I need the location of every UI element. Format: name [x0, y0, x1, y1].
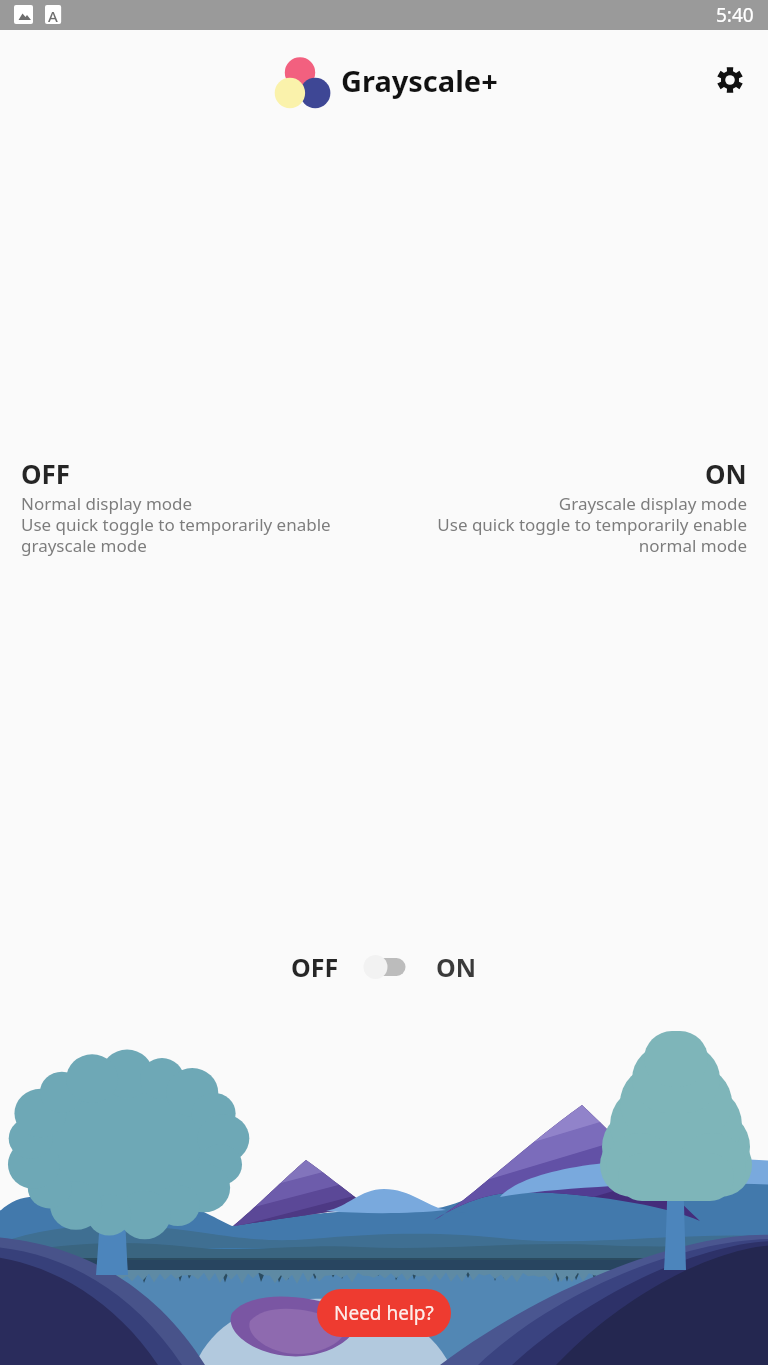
button[interactable]: Settings: [702, 52, 758, 108]
staticText: Grayscale display mode Use quick toggle …: [396, 492, 747, 557]
staticText: ON: [705, 456, 747, 491]
staticText: OFF: [291, 950, 339, 984]
staticText: Grayscale+: [341, 61, 498, 100]
staticText: OFF: [21, 456, 71, 491]
staticText: Normal display mode Use quick toggle to …: [21, 492, 372, 557]
staticText: A: [48, 6, 58, 26]
staticText: 5:40: [716, 2, 754, 28]
staticText: ON: [436, 950, 477, 984]
staticText: Need help?: [334, 1300, 434, 1326]
button[interactable]: Need help?: [317, 1289, 451, 1337]
button[interactable]: Toggle grayscale mode: [339, 941, 436, 993]
